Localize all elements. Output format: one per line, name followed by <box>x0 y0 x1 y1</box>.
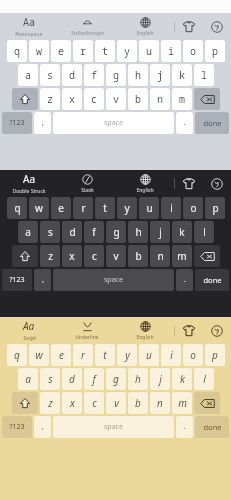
button[interactable]: ?123 <box>2 416 32 438</box>
button[interactable]: , <box>34 269 51 291</box>
button[interactable]: s <box>40 64 60 86</box>
button[interactable]: c <box>84 245 104 267</box>
button[interactable]: . <box>176 269 193 291</box>
button[interactable]: h <box>128 221 148 243</box>
button[interactable]: f <box>84 64 104 86</box>
button[interactable]: v <box>106 88 126 110</box>
button[interactable]: Emoji <box>203 170 231 197</box>
button[interactable]: n <box>150 88 170 110</box>
button[interactable]: Shift <box>12 392 38 414</box>
button[interactable]: Strikethrough <box>58 13 116 40</box>
button[interactable]: f <box>84 368 104 390</box>
button[interactable]: x <box>62 392 82 414</box>
button[interactable]: x <box>62 245 82 267</box>
button[interactable]: l <box>194 64 214 86</box>
button[interactable]: d <box>62 64 82 86</box>
button[interactable]: u <box>139 344 159 366</box>
button[interactable]: m <box>172 245 192 267</box>
button[interactable]: done <box>195 269 229 291</box>
button[interactable]: English <box>116 317 174 344</box>
button[interactable]: y <box>117 40 137 62</box>
button[interactable]: a <box>18 221 38 243</box>
button[interactable]: s <box>40 368 60 390</box>
button[interactable]: done <box>195 112 229 134</box>
button[interactable]: . <box>176 416 193 438</box>
button[interactable]: x <box>62 88 82 110</box>
button[interactable]: o <box>183 344 203 366</box>
button[interactable]: l <box>194 368 214 390</box>
button[interactable]: o <box>183 40 203 62</box>
button[interactable]: m <box>172 88 192 110</box>
button[interactable]: p <box>205 197 225 219</box>
button[interactable]: g <box>106 368 126 390</box>
button[interactable]: Aa <box>0 13 58 40</box>
button[interactable]: space <box>53 269 174 291</box>
button[interactable]: m <box>172 392 192 414</box>
button[interactable]: f <box>84 221 104 243</box>
button[interactable]: y <box>117 197 137 219</box>
button[interactable]: j <box>150 64 170 86</box>
button[interactable]: v <box>106 392 126 414</box>
button[interactable]: Emoji <box>203 317 231 344</box>
button[interactable]: o <box>183 197 203 219</box>
button[interactable]: z <box>40 88 60 110</box>
button[interactable]: space <box>53 416 174 438</box>
button[interactable]: a <box>18 368 38 390</box>
button[interactable]: a <box>18 64 38 86</box>
button[interactable]: d <box>62 221 82 243</box>
button[interactable]: done <box>195 416 229 438</box>
button[interactable]: , <box>34 416 51 438</box>
button[interactable]: Shift <box>12 88 38 110</box>
button[interactable]: z <box>40 245 60 267</box>
button[interactable]: z <box>40 392 60 414</box>
button[interactable]: Themes <box>175 317 203 344</box>
button[interactable]: Backspace <box>194 245 220 267</box>
button[interactable]: w <box>29 197 49 219</box>
button[interactable]: p <box>205 344 225 366</box>
button[interactable]: b <box>128 245 148 267</box>
button[interactable]: d <box>62 368 82 390</box>
button[interactable]: Emoji <box>203 13 231 40</box>
button[interactable]: ?123 <box>2 112 32 134</box>
button[interactable]: b <box>128 392 148 414</box>
button[interactable]: i <box>161 344 181 366</box>
button[interactable]: k <box>172 64 192 86</box>
button[interactable]: q <box>7 344 27 366</box>
button[interactable]: j <box>150 221 170 243</box>
button[interactable]: r <box>73 40 93 62</box>
button[interactable]: r <box>73 344 93 366</box>
button[interactable]: e <box>51 40 71 62</box>
button[interactable]: q <box>7 197 27 219</box>
button[interactable]: r <box>73 197 93 219</box>
button[interactable]: Aa <box>0 317 58 344</box>
button[interactable]: h <box>128 64 148 86</box>
button[interactable]: q <box>7 40 27 62</box>
button[interactable]: g <box>106 221 126 243</box>
button[interactable]: t <box>95 40 115 62</box>
button[interactable]: l <box>194 221 214 243</box>
button[interactable]: ?123 <box>2 269 32 291</box>
button[interactable]: Aa <box>0 170 58 197</box>
button[interactable]: k <box>172 368 192 390</box>
button[interactable]: English <box>116 170 174 197</box>
button[interactable]: Underline <box>58 317 116 344</box>
button[interactable]: space <box>53 112 174 134</box>
button[interactable]: Themes <box>175 170 203 197</box>
button[interactable]: c <box>84 392 104 414</box>
button[interactable]: t <box>95 344 115 366</box>
button[interactable]: i <box>161 40 181 62</box>
button[interactable]: g <box>106 64 126 86</box>
button[interactable]: e <box>51 344 71 366</box>
button[interactable]: k <box>172 221 192 243</box>
button[interactable]: Backspace <box>194 88 220 110</box>
button[interactable]: w <box>29 40 49 62</box>
button[interactable]: e <box>51 197 71 219</box>
button[interactable]: u <box>139 197 159 219</box>
button[interactable]: . <box>176 112 193 134</box>
button[interactable]: n <box>150 392 170 414</box>
button[interactable]: , <box>34 112 51 134</box>
button[interactable]: n <box>150 245 170 267</box>
button[interactable]: Shift <box>12 245 38 267</box>
button[interactable]: y <box>117 344 137 366</box>
button[interactable]: b <box>128 88 148 110</box>
